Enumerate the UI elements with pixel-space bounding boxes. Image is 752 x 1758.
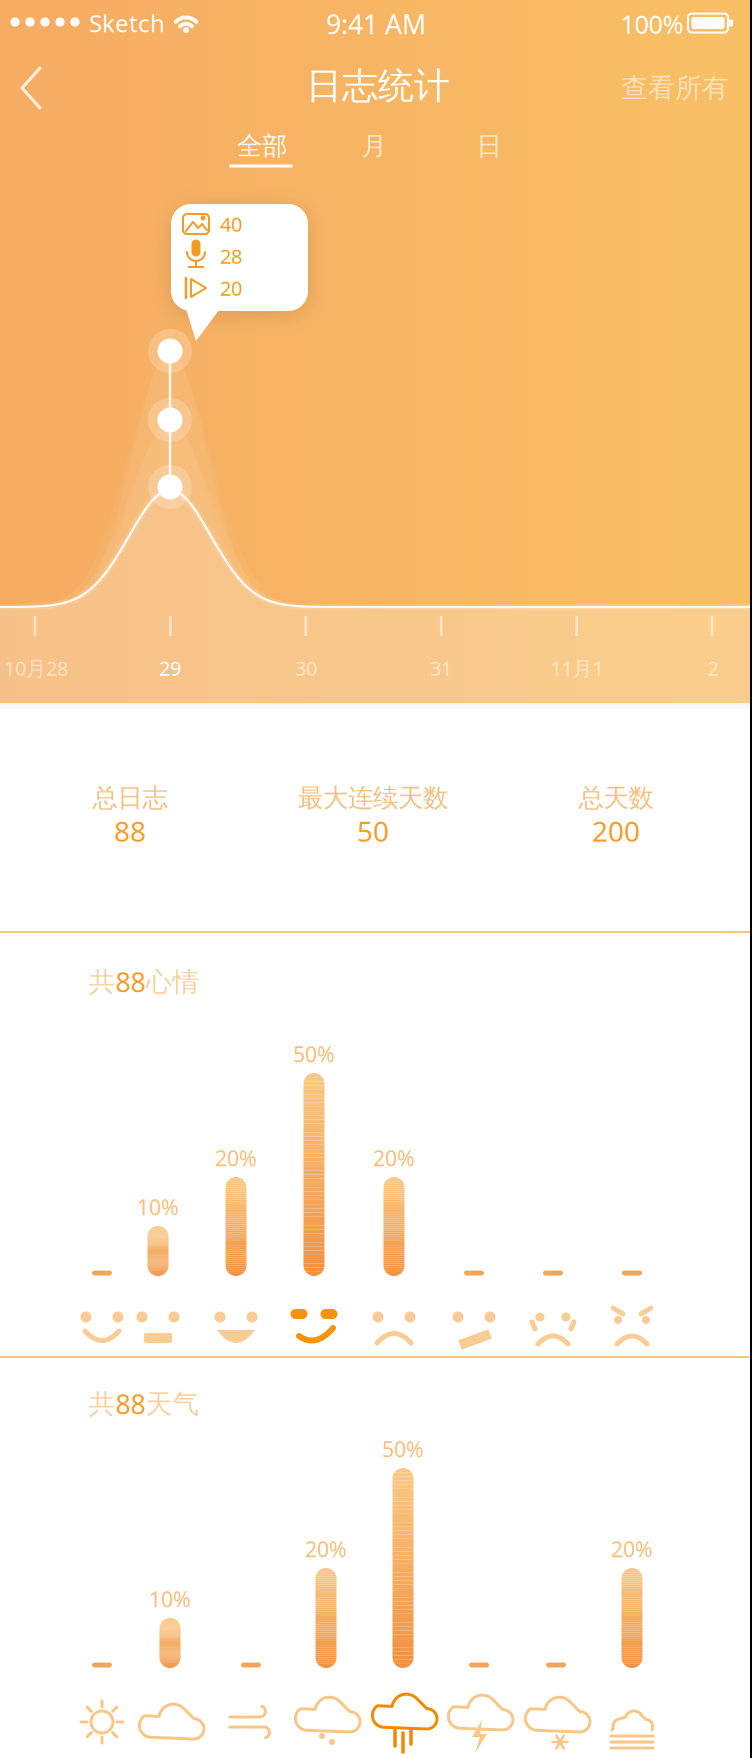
staticText: 心情 xyxy=(145,966,199,998)
staticText: Sketch xyxy=(89,7,165,39)
staticText: 20% xyxy=(305,1535,347,1563)
staticText: 100% xyxy=(620,7,683,41)
staticText: 共 xyxy=(88,966,115,998)
staticText: 最大连续天数 xyxy=(298,782,448,813)
staticText: 40 xyxy=(220,211,242,237)
staticText: 9:41 AM xyxy=(326,6,426,42)
staticText: 查看所有 xyxy=(621,72,729,104)
staticText: 50 xyxy=(357,812,389,850)
button[interactable]: Back xyxy=(8,50,52,126)
button[interactable]: 月 xyxy=(334,124,414,168)
staticText: 88 xyxy=(115,964,145,1000)
staticText: 11月1 xyxy=(550,655,603,681)
staticText: 20% xyxy=(373,1144,415,1172)
staticText: 30 xyxy=(295,655,317,681)
staticText: 88 xyxy=(115,1386,145,1422)
staticText: 20 xyxy=(220,275,242,301)
staticText: 月 xyxy=(361,130,386,161)
staticText: 50% xyxy=(293,1040,335,1068)
staticText: 10% xyxy=(137,1193,179,1221)
staticText: 2 xyxy=(707,655,718,681)
staticText: 200 xyxy=(592,812,640,850)
staticText: 总天数 xyxy=(578,782,653,813)
staticText: 28 xyxy=(220,243,242,269)
staticText: 29 xyxy=(159,655,181,681)
staticText: 20% xyxy=(215,1144,257,1172)
staticText: 31 xyxy=(430,655,452,681)
staticText: 日志统计 xyxy=(306,64,450,108)
staticText: 共 xyxy=(88,1388,115,1420)
staticText: 日 xyxy=(476,130,501,161)
button[interactable]: 查看所有 xyxy=(621,72,729,104)
staticText: 10月28 xyxy=(4,655,68,681)
staticText: 10% xyxy=(149,1585,191,1613)
button[interactable]: 日 xyxy=(449,124,529,168)
staticText: 88 xyxy=(114,812,146,850)
staticText: 20% xyxy=(611,1535,653,1563)
staticText: 天气 xyxy=(145,1388,199,1420)
button[interactable]: 全部 xyxy=(212,124,312,168)
staticText: 全部 xyxy=(237,130,287,161)
staticText: 总日志 xyxy=(92,782,167,813)
staticText: 50% xyxy=(382,1435,424,1463)
